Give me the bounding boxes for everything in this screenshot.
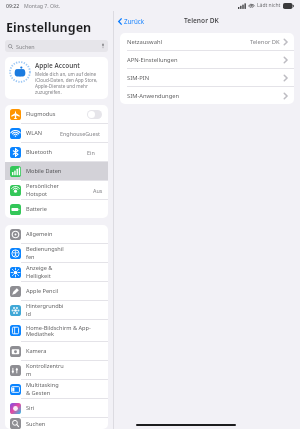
staticText: Einstellungen <box>6 19 92 36</box>
button[interactable]: SIM-PIN <box>120 69 294 86</box>
button[interactable]: Flugmodus toggle <box>87 110 102 119</box>
button[interactable]: Bedienungshilfen <box>5 244 108 262</box>
staticText: Telenor DK <box>184 16 219 25</box>
button[interactable]: SIM-Anwendungen <box>120 87 294 104</box>
button[interactable]: Hintergrundbild <box>5 301 108 319</box>
staticText: APN-Einstellungen <box>127 56 178 64</box>
staticText: Bluetooth <box>26 148 52 156</box>
button[interactable]: Kontrollzentrum <box>5 361 108 379</box>
staticText: EnghouseGuest <box>60 130 101 137</box>
button[interactable]: Apple Pencil <box>5 282 108 300</box>
staticText: Suchen <box>26 420 46 428</box>
staticText: Apple Account <box>35 61 80 70</box>
button[interactable]: Home-Bildschirm & App-Mediathek <box>5 320 108 341</box>
staticText: Lädt nicht <box>257 2 281 9</box>
staticText: Bedienungshilfen <box>26 245 64 261</box>
staticText: Home-Bildschirm & App-Mediathek <box>26 324 103 338</box>
button[interactable]: Suchen <box>5 40 108 52</box>
staticText: Anzeige & Helligkeit <box>26 264 64 280</box>
button[interactable]: Persönlicher Hotspot <box>5 181 108 199</box>
button[interactable]: Bluetooth <box>5 143 108 161</box>
staticText: WLAN <box>26 129 42 137</box>
button[interactable]: Mobile Daten <box>5 162 108 180</box>
button[interactable]: Batterie <box>5 200 108 218</box>
staticText: Kamera <box>26 347 47 355</box>
staticText: Netzauswahl <box>127 38 162 46</box>
staticText: Aus <box>93 187 103 194</box>
staticText: Siri <box>26 404 35 412</box>
staticText: Hintergrundbild <box>26 302 64 318</box>
button[interactable]: Netzauswahl <box>120 33 294 50</box>
staticText: Persönlicher Hotspot <box>26 182 59 198</box>
button[interactable]: Kamera <box>5 342 108 360</box>
button[interactable]: Zurück <box>114 15 151 27</box>
button[interactable]: Siri <box>5 399 108 417</box>
staticText: 09:22 <box>6 2 20 9</box>
staticText: SIM-Anwendungen <box>127 92 180 100</box>
staticText: Mobile Daten <box>26 167 62 175</box>
staticText: Telenor DK <box>250 38 280 46</box>
staticText: SIM-PIN <box>127 74 150 82</box>
staticText: Multitasking & Gesten <box>26 381 64 397</box>
staticText: Batterie <box>26 205 47 213</box>
staticText: Apple Pencil <box>26 287 59 295</box>
button[interactable]: Multitasking & Gesten <box>5 380 108 398</box>
button[interactable]: Flugmodus <box>5 105 108 123</box>
staticText: Zurück <box>124 17 145 25</box>
staticText: Flugmodus <box>26 110 56 118</box>
button[interactable]: Allgemein <box>5 225 108 243</box>
button[interactable]: Apple Account <box>5 57 108 99</box>
button[interactable]: WLAN <box>5 124 108 142</box>
staticText: Allgemein <box>26 230 53 238</box>
button[interactable]: APN-Einstellungen <box>120 51 294 68</box>
button[interactable]: Suchen <box>5 418 108 429</box>
staticText: Montag 7. Okt. <box>24 2 61 9</box>
staticText: Ein <box>87 149 95 156</box>
staticText: Melde dich an, um auf deine iCloud-Daten… <box>35 71 104 95</box>
staticText: Suchen <box>16 43 35 50</box>
staticText: Kontrollzentrum <box>26 362 64 378</box>
button[interactable]: Anzeige & Helligkeit <box>5 263 108 281</box>
